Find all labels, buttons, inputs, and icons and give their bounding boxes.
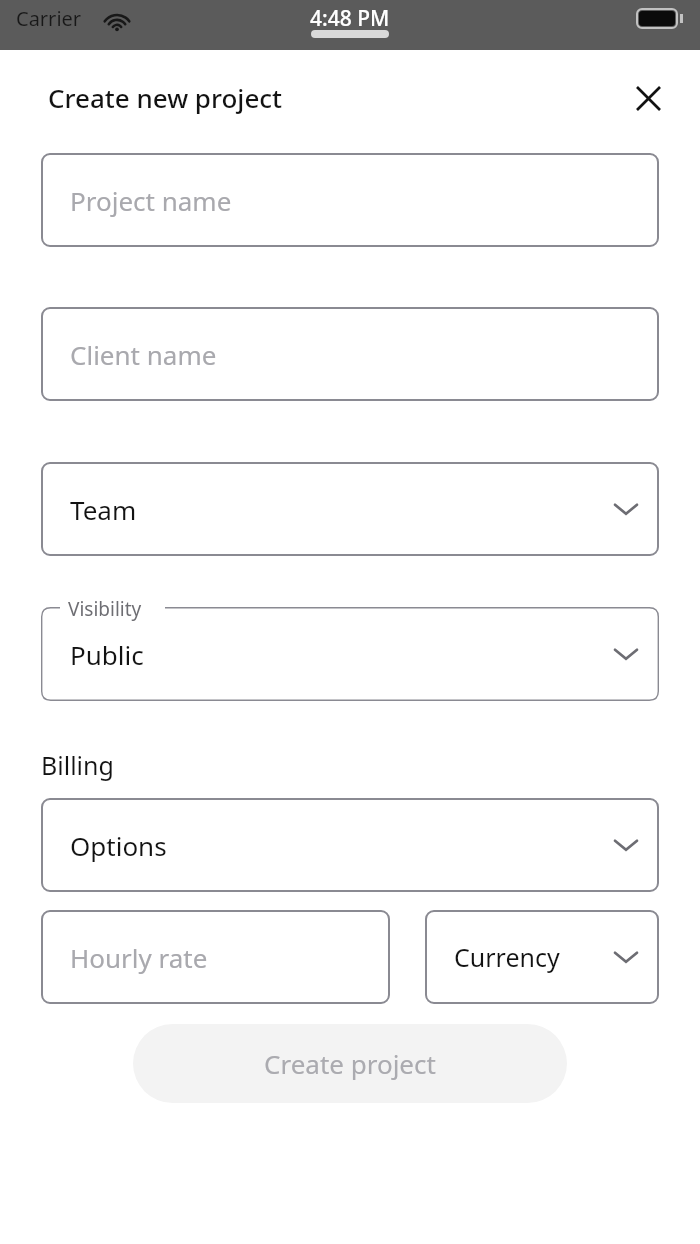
staticText: Create project [264,1046,436,1081]
staticText: Currency [454,940,560,974]
button[interactable]: Client name [41,307,659,401]
button[interactable]: Team [41,462,659,556]
button[interactable]: Close [626,76,670,120]
staticText: Billing [41,748,114,782]
staticText: Carrier [16,5,82,32]
staticText: Create new project [48,80,283,115]
staticText: Client name [70,337,217,372]
button[interactable]: Visibility [41,607,659,701]
button[interactable]: Create project [133,1024,567,1103]
button[interactable]: Currency [425,910,659,1004]
staticText: Project name [70,183,232,218]
button[interactable]: Hourly rate [41,910,390,1004]
staticText: 4:48 PM [310,4,390,33]
button[interactable]: Options [41,798,659,892]
staticText: Visibility [68,596,142,622]
button[interactable]: Project name [41,153,659,247]
staticText: Team [70,492,137,527]
staticText: Hourly rate [70,940,208,975]
staticText: Public [70,637,144,672]
staticText: Options [70,828,167,863]
